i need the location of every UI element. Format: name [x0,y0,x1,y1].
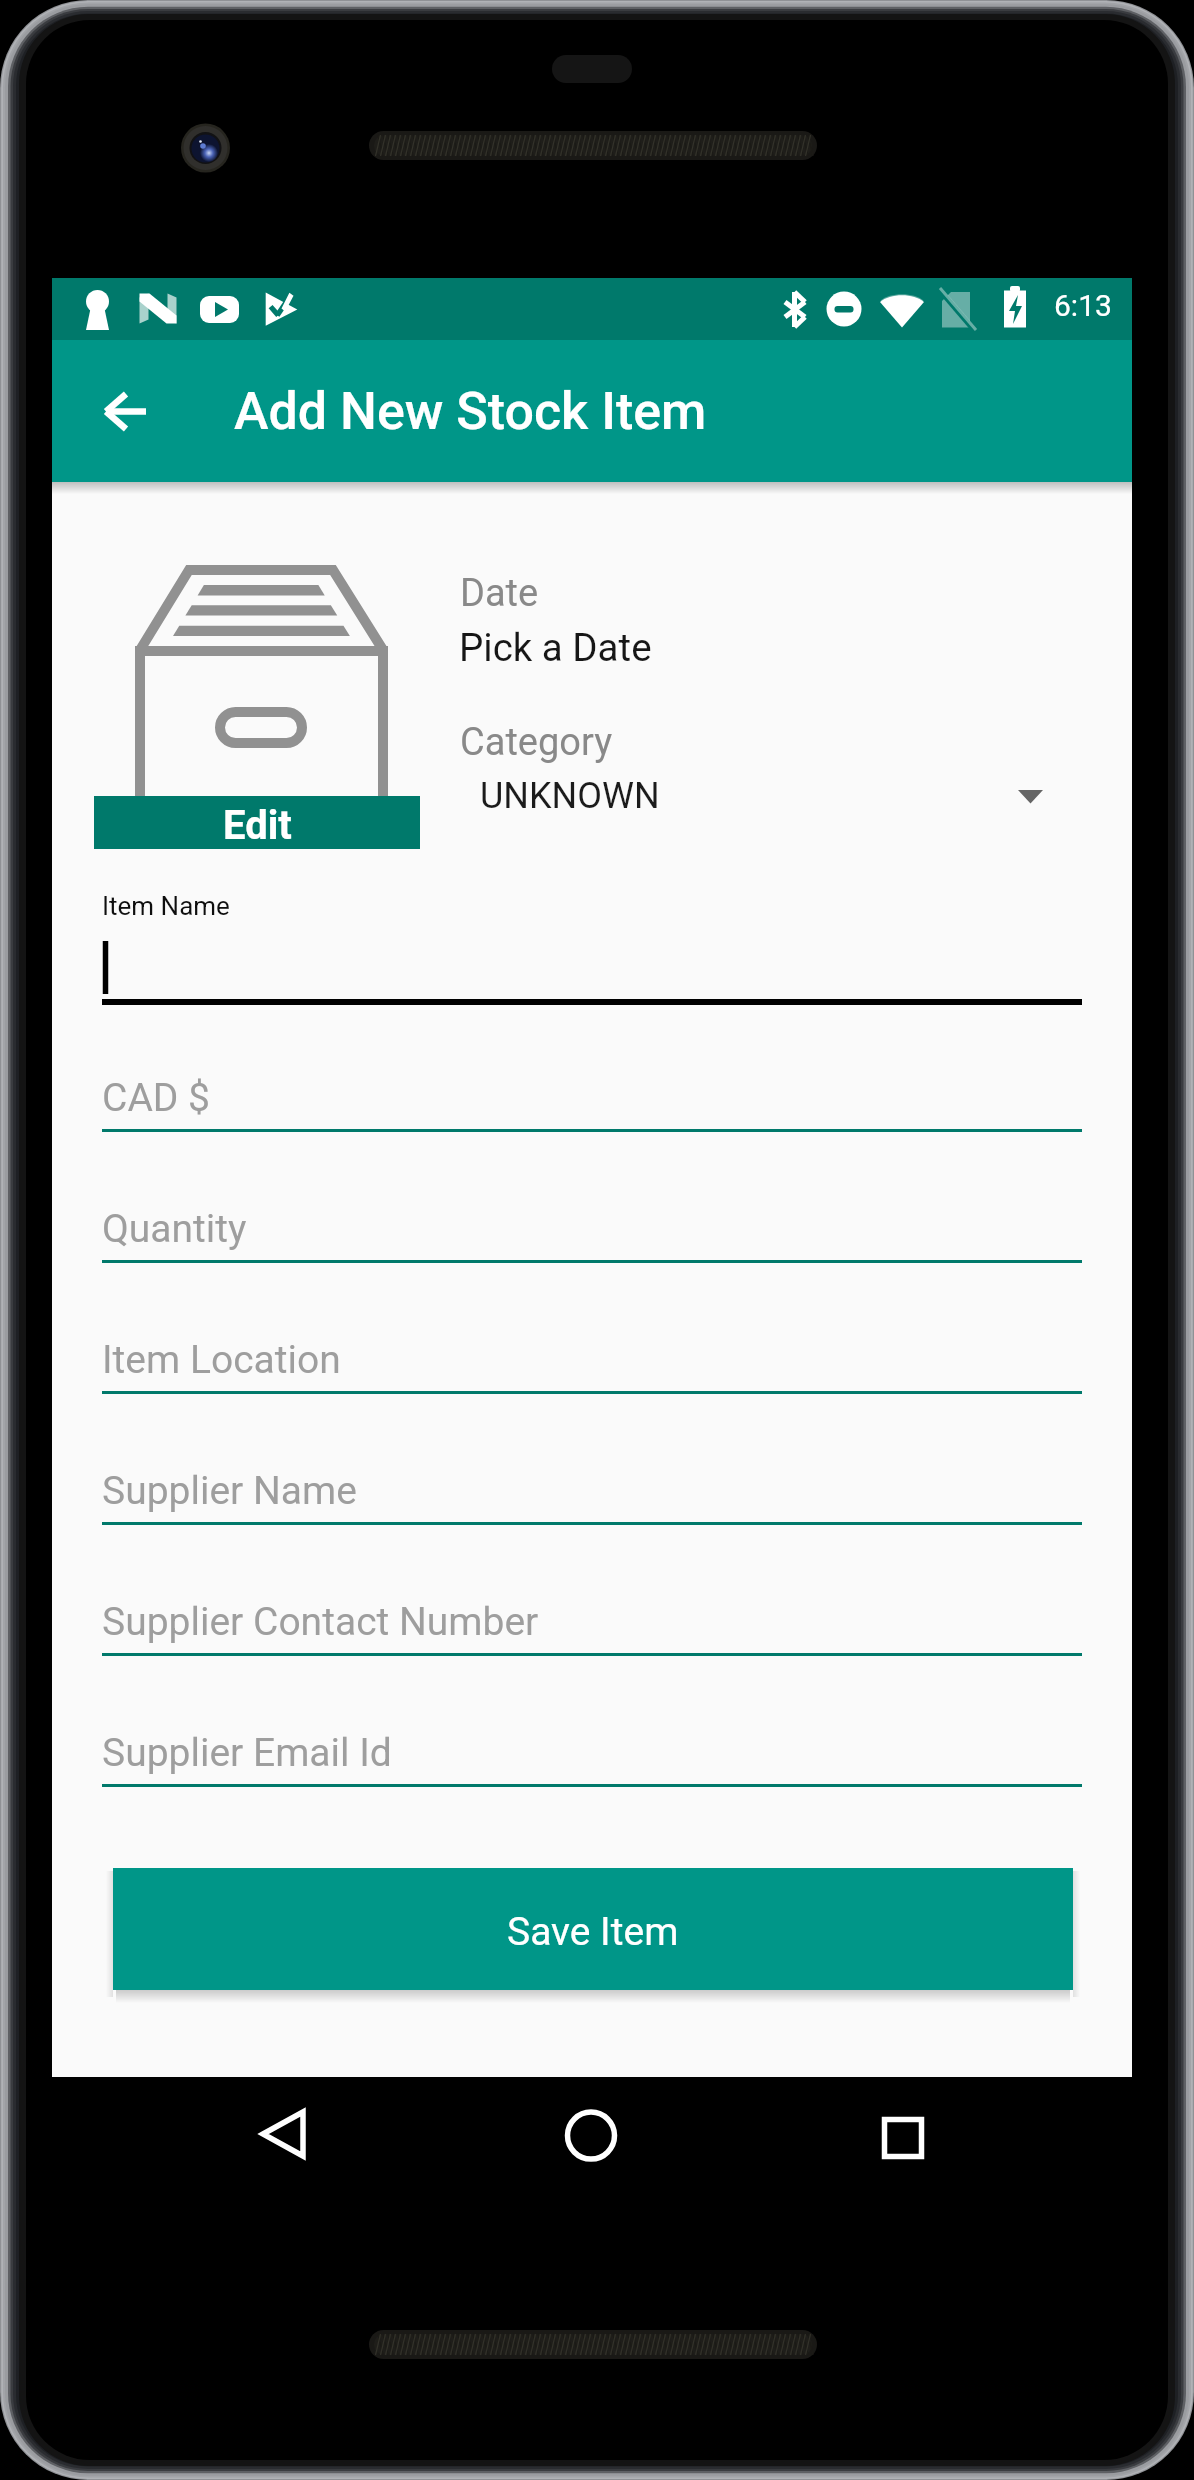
staticText: Supplier Name [102,1468,357,1514]
staticText: Quantity [102,1206,247,1252]
button[interactable] [102,933,1082,1005]
staticText: Save Item [507,1909,679,1955]
button[interactable]: Quantity [102,1177,1082,1263]
button[interactable]: Home [531,2076,651,2192]
button[interactable]: Supplier Email Id [102,1701,1082,1787]
staticText: Pick a Date [459,625,652,670]
button[interactable]: Back [222,2076,342,2192]
button[interactable]: UNKNOWN [458,762,1092,826]
button[interactable]: Item Location [102,1308,1082,1394]
staticText: Add New Stock Item [234,381,707,442]
staticText: Item Name [102,891,230,921]
staticText: UNKNOWN [480,775,660,817]
staticText: CAD $ [102,1075,211,1121]
staticText: Supplier Contact Number [102,1599,539,1645]
button[interactable]: Save Item [113,1868,1073,1990]
button[interactable]: Supplier Name [102,1439,1082,1525]
staticText: Supplier Email Id [102,1730,392,1776]
button[interactable]: Back [78,363,174,459]
button[interactable]: Supplier Contact Number [102,1570,1082,1656]
staticText: Category [460,720,613,765]
staticText: 6:13 [1054,288,1112,323]
staticText: Edit [223,802,292,849]
button[interactable]: CAD $ [102,1046,1082,1132]
button[interactable]: Recent apps [842,2076,962,2192]
button[interactable]: Pick a Date [459,625,652,670]
button[interactable]: Edit [94,796,420,849]
staticText: Item Location [102,1337,341,1383]
staticText: Date [460,571,539,616]
